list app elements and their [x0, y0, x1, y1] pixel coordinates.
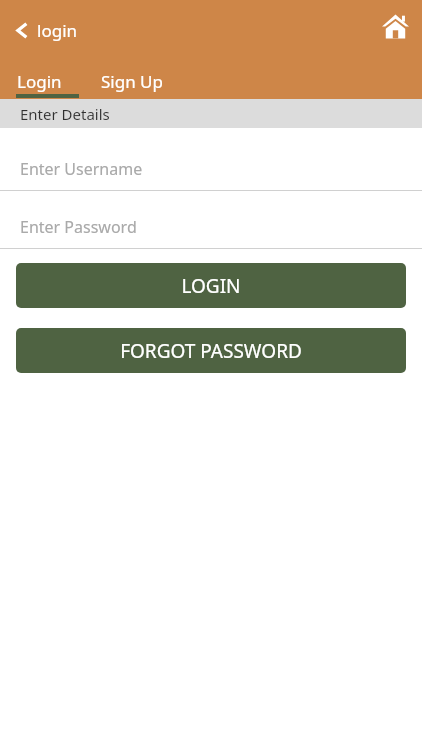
button[interactable]: Enter Username [0, 147, 422, 191]
staticText: Login [17, 70, 62, 93]
staticText: login [37, 19, 78, 42]
button[interactable]: Sign Up [79, 59, 185, 99]
staticText: Enter Password [20, 216, 137, 238]
staticText: FORGOT PASSWORD [120, 338, 302, 364]
button[interactable]: Enter Password [0, 205, 422, 249]
staticText: LOGIN [181, 273, 241, 299]
button[interactable]: LOGIN [16, 263, 406, 308]
button[interactable]: Home [378, 9, 412, 43]
staticText: Enter Username [20, 158, 143, 180]
button[interactable]: Back [14, 19, 78, 42]
button[interactable]: FORGOT PASSWORD [16, 328, 406, 373]
staticText: Sign Up [101, 70, 163, 93]
staticText: Enter Details [20, 104, 110, 124]
button[interactable]: Login [0, 59, 79, 99]
other: Back [14, 23, 29, 38]
